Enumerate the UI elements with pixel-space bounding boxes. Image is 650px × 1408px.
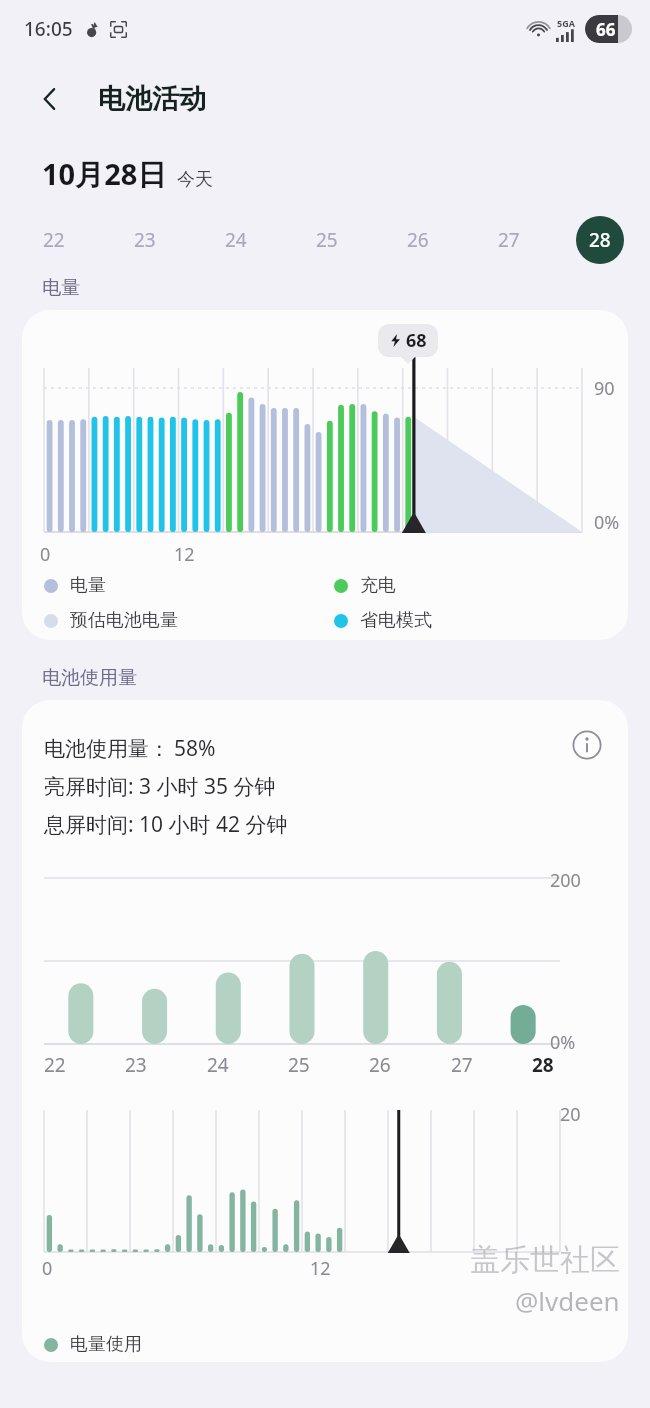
button[interactable]: 26 bbox=[394, 216, 442, 264]
staticText: 5GA bbox=[557, 17, 575, 29]
staticText: 90 bbox=[594, 376, 615, 401]
staticText: 电池活动 bbox=[98, 82, 206, 116]
staticText: 26 bbox=[369, 1052, 397, 1078]
staticText: 20 bbox=[560, 1102, 581, 1127]
button[interactable]: 23 bbox=[121, 216, 169, 264]
button[interactable]: 22 bbox=[30, 216, 78, 264]
button[interactable]: Back bbox=[28, 77, 72, 121]
staticText: 16:05 bbox=[24, 16, 73, 42]
button[interactable]: 90 bbox=[22, 310, 628, 640]
staticText: 24 bbox=[225, 227, 247, 253]
button[interactable]: Info bbox=[564, 722, 610, 768]
staticText: 0% bbox=[550, 1030, 576, 1055]
staticText: 亮屏时间: 3 小时 35 分钟 bbox=[44, 772, 276, 801]
staticText: @lvdeen bbox=[515, 1283, 620, 1318]
staticText: 23 bbox=[134, 227, 156, 253]
staticText: 200 bbox=[550, 868, 581, 893]
staticText: 省电模式 bbox=[360, 609, 432, 632]
staticText: 68 bbox=[406, 328, 427, 353]
staticText: 27 bbox=[498, 227, 520, 253]
staticText: 58% bbox=[174, 734, 216, 763]
button[interactable]: 28 bbox=[576, 216, 624, 264]
staticText: 27 bbox=[451, 1052, 479, 1078]
staticText: 预估电池电量 bbox=[70, 609, 178, 632]
staticText: 充电 bbox=[360, 574, 396, 597]
staticText: 66 bbox=[596, 18, 616, 41]
staticText: 28 bbox=[532, 1052, 560, 1078]
button[interactable]: 电池使用量： bbox=[22, 700, 628, 1362]
staticText: 电池使用量： bbox=[44, 736, 170, 762]
button[interactable]: 24 bbox=[212, 216, 260, 264]
staticText: 0% bbox=[594, 510, 620, 535]
staticText: 22 bbox=[44, 1052, 72, 1078]
staticText: 0 bbox=[40, 542, 51, 567]
staticText: 22 bbox=[43, 227, 65, 253]
staticText: 23 bbox=[125, 1052, 153, 1078]
staticText: 24 bbox=[207, 1052, 235, 1078]
staticText: 盖乐世社区 bbox=[470, 1241, 620, 1279]
staticText: 0 bbox=[42, 1256, 53, 1281]
button[interactable]: 27 bbox=[485, 216, 533, 264]
staticText: 电量 bbox=[42, 276, 80, 300]
staticText: 10月28日 bbox=[42, 154, 167, 194]
staticText: 息屏时间: 10 小时 42 分钟 bbox=[44, 810, 288, 839]
staticText: 今天 bbox=[177, 168, 213, 191]
staticText: 12 bbox=[310, 1256, 331, 1281]
staticText: 电量使用 bbox=[70, 1333, 142, 1356]
staticText: 28 bbox=[589, 227, 611, 253]
staticText: 电量 bbox=[70, 574, 106, 597]
staticText: 26 bbox=[407, 227, 429, 253]
staticText: 25 bbox=[288, 1052, 316, 1078]
staticText: 12 bbox=[174, 542, 195, 567]
button[interactable]: 25 bbox=[303, 216, 351, 264]
staticText: 电池使用量 bbox=[42, 666, 137, 690]
staticText: 25 bbox=[316, 227, 338, 253]
